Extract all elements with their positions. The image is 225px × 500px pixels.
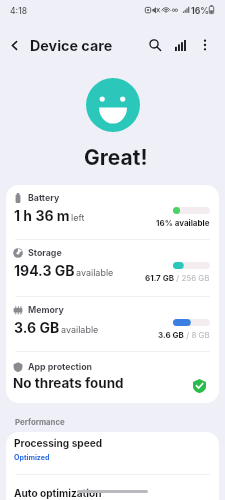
button[interactable]: Auto optimization: [6, 475, 219, 500]
button[interactable]: More options: [193, 33, 217, 57]
button[interactable]: Navigate up: [1, 32, 27, 58]
staticText: available: [76, 267, 114, 278]
button[interactable]: App protection: [6, 352, 219, 403]
staticText: 4:18: [10, 6, 28, 16]
button[interactable]: Storage: [6, 240, 219, 296]
staticText: / 8 GB: [184, 330, 210, 340]
button[interactable]: Processing speed: [6, 432, 219, 474]
button[interactable]: Search: [143, 33, 167, 57]
staticText: Battery: [28, 192, 60, 203]
staticText: 16%: [191, 6, 210, 16]
staticText: Optimized: [14, 453, 50, 462]
staticText: App protection: [28, 361, 93, 372]
staticText: 1 h 36 m: [14, 207, 70, 224]
staticText: Device care: [30, 37, 113, 54]
button[interactable]: Memory: [6, 297, 219, 351]
staticText: left: [71, 212, 85, 223]
staticText: No threats found: [13, 375, 124, 391]
staticText: Auto optimization: [14, 487, 102, 499]
staticText: available: [61, 324, 99, 335]
staticText: / 256 GB: [174, 273, 210, 283]
staticText: Performance: [15, 417, 65, 426]
staticText: 194.3 GB: [14, 262, 75, 279]
button[interactable]: Battery: [6, 185, 219, 239]
staticText: Memory: [28, 304, 64, 315]
staticText: Great!: [84, 145, 148, 170]
staticText: 3.6 GB: [14, 319, 60, 336]
staticText: 61.7 GB: [145, 273, 174, 283]
staticText: Storage: [28, 247, 62, 258]
button[interactable]: Usage statistics: [168, 33, 192, 57]
staticText: Processing speed: [14, 437, 103, 449]
staticText: 3.6 GB: [158, 330, 184, 340]
staticText: 16% available: [156, 218, 210, 228]
